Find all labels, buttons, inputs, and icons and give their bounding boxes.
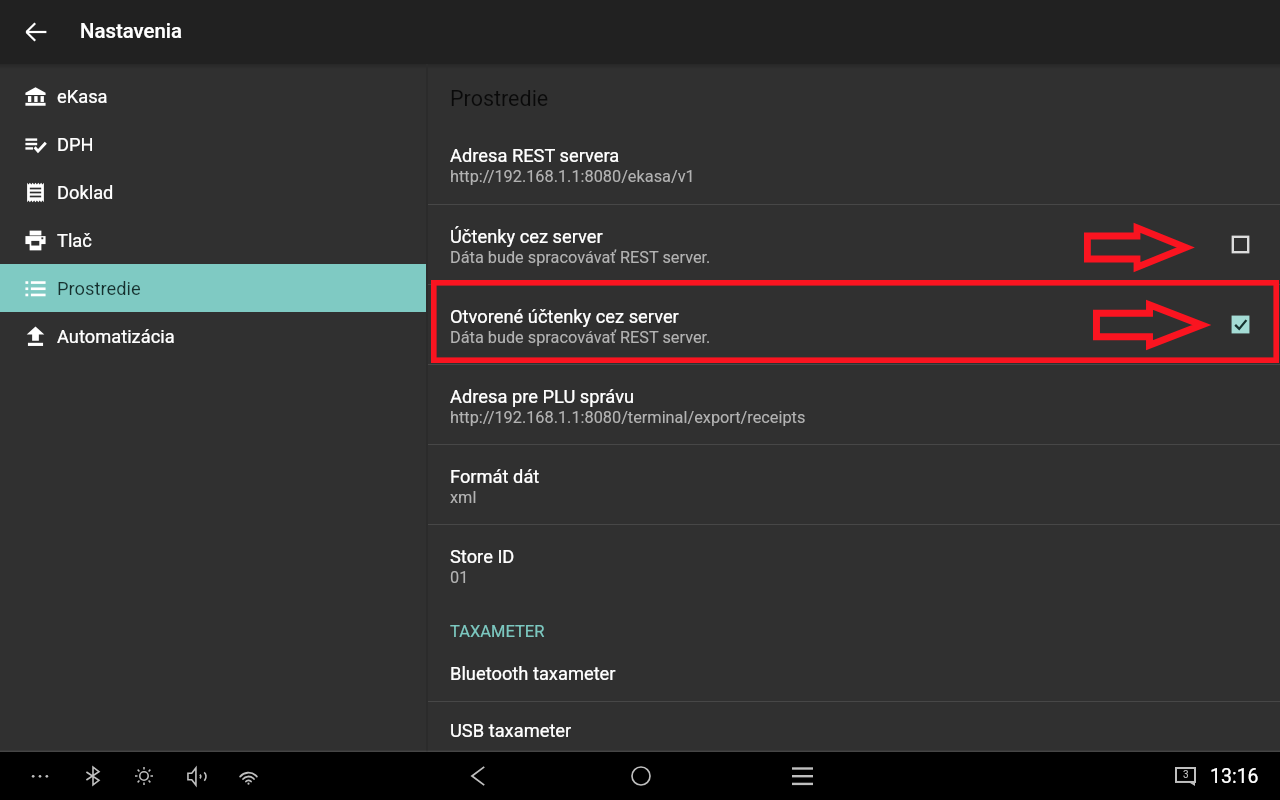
button[interactable]: Automatizácia: [0, 312, 426, 360]
button[interactable]: Brightness: [124, 756, 164, 796]
button[interactable]: Volume: [176, 756, 216, 796]
button[interactable]: Back: [456, 754, 500, 798]
button[interactable]: Home: [619, 754, 663, 798]
staticText: Bluetooth taxameter: [450, 663, 616, 684]
button[interactable]: Prostredie: [0, 264, 426, 312]
staticText: 01: [450, 568, 469, 587]
button[interactable]: Adresa REST servera: [428, 124, 1280, 203]
staticText: DPH: [57, 134, 94, 155]
button[interactable]: Store ID: [428, 525, 1280, 604]
staticText: Prostredie: [450, 86, 549, 111]
button[interactable]: Otvorené účtenky cez server: [428, 285, 1280, 364]
button[interactable]: Wi-Fi: [228, 756, 268, 796]
staticText: Prostredie: [57, 278, 141, 299]
staticText: Adresa pre PLU správu: [450, 386, 635, 407]
button[interactable]: Bluetooth: [73, 756, 113, 796]
staticText: http://192.168.1.1:8080/ekasa/v1: [450, 167, 695, 186]
staticText: xml: [450, 488, 477, 507]
button[interactable]: Recents: [780, 754, 824, 798]
button[interactable]: Formát dát: [428, 445, 1280, 524]
staticText: TAXAMETER: [450, 622, 545, 641]
staticText: Formát dát: [450, 466, 540, 487]
button[interactable]: Bluetooth taxameter: [428, 645, 1280, 701]
staticText: Automatizácia: [57, 326, 175, 347]
button[interactable]: Tlač: [0, 216, 426, 264]
button[interactable]: Doklad: [0, 168, 426, 216]
staticText: Dáta bude spracovávať REST server.: [450, 248, 711, 267]
button[interactable]: More options: [20, 756, 60, 796]
staticText: Adresa REST servera: [450, 145, 620, 166]
button[interactable]: DPH: [0, 120, 426, 168]
staticText: Store ID: [450, 546, 515, 567]
staticText: Otvorené účtenky cez server: [450, 306, 679, 327]
button[interactable]: USB taxameter: [428, 702, 1280, 758]
button[interactable]: Back: [0, 0, 72, 64]
staticText: 3: [1183, 769, 1189, 781]
staticText: Tlač: [57, 230, 92, 251]
staticText: 13:16: [1210, 765, 1259, 788]
staticText: Účtenky cez server: [450, 226, 603, 247]
button[interactable]: Adresa pre PLU správu: [428, 365, 1280, 444]
staticText: Doklad: [57, 182, 114, 203]
staticText: Dáta bude spracovávať REST server.: [450, 328, 711, 347]
button[interactable]: Účtenky cez server: [428, 205, 1280, 284]
staticText: eKasa: [57, 86, 108, 107]
staticText: USB taxameter: [450, 720, 572, 741]
button[interactable]: eKasa: [0, 72, 426, 120]
staticText: Nastavenia: [80, 19, 183, 43]
staticText: http://192.168.1.1:8080/terminal/export/…: [450, 408, 806, 427]
